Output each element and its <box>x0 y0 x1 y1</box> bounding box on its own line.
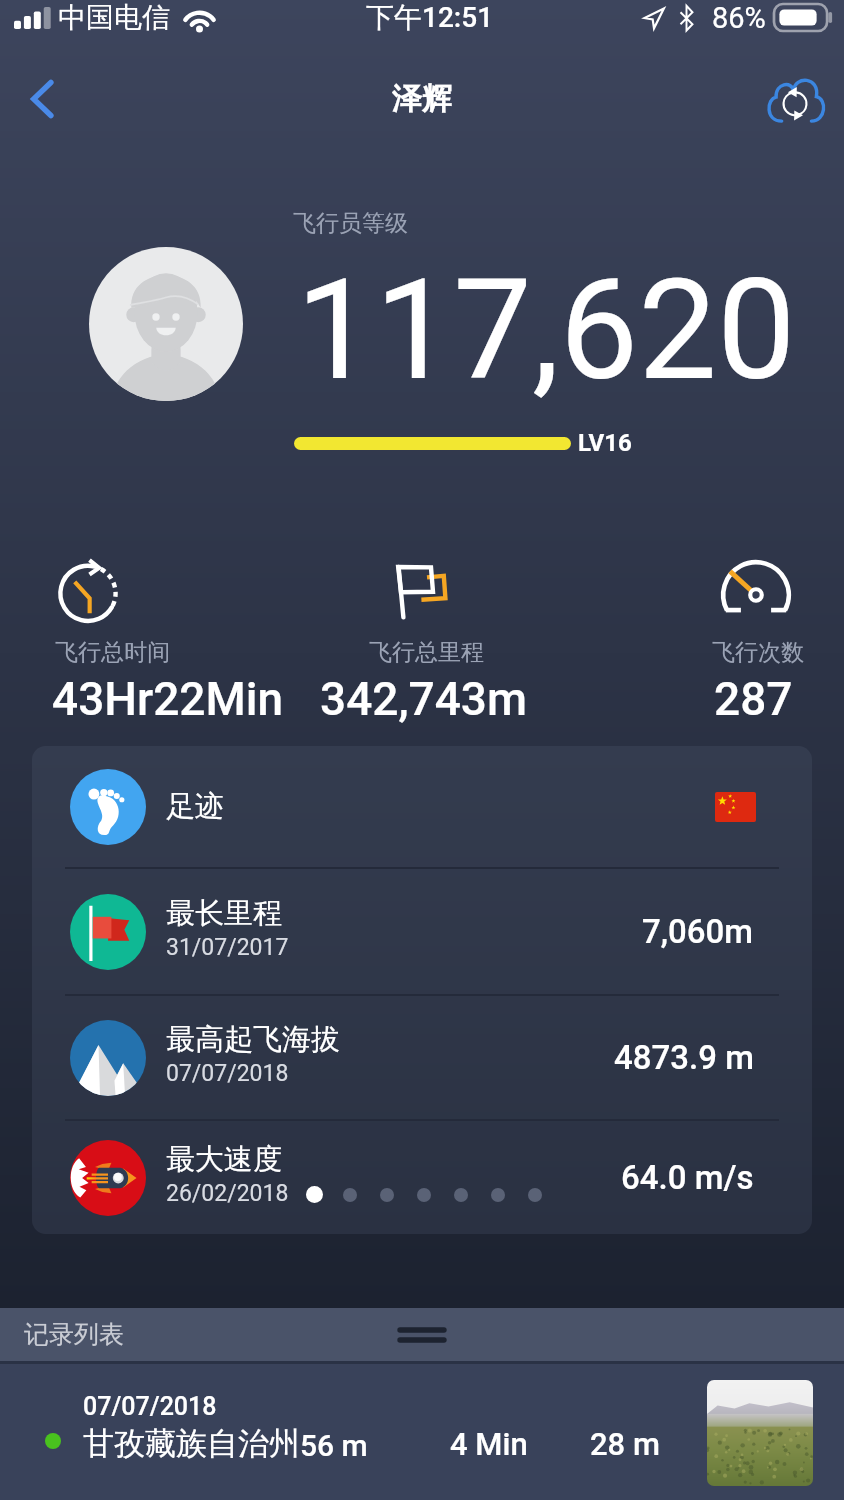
staticText: 下午12:51 <box>366 0 494 35</box>
staticText: 43Hr22Min <box>52 672 284 726</box>
staticText: 117,620 <box>296 248 796 412</box>
button[interactable]: 最大速度 <box>32 1121 812 1234</box>
staticText: 31/07/2017 <box>166 934 289 961</box>
staticText: 甘孜藏族自治州 <box>83 1424 300 1463</box>
staticText: 最大速度 <box>166 1141 282 1178</box>
staticText: 28 m <box>590 1426 660 1462</box>
button[interactable]: 足迹 <box>32 746 812 867</box>
button[interactable]: 07/07/2018 <box>0 1364 844 1500</box>
staticText: 飞行员等级 <box>293 209 408 238</box>
staticText: 07/07/2018 <box>166 1060 289 1087</box>
staticText: 最高起飞海拔 <box>166 1021 340 1058</box>
staticText: 飞行总里程 <box>369 638 484 667</box>
staticText: 中国电信 <box>58 0 170 35</box>
staticText: 7,060m <box>642 912 754 951</box>
staticText: 泽辉 <box>392 80 452 118</box>
button[interactable]: 最高起飞海拔 <box>32 996 812 1119</box>
staticText: LV16 <box>578 429 632 457</box>
staticText: 07/07/2018 <box>83 1392 217 1421</box>
staticText: 342,743m <box>320 672 528 726</box>
staticText: 飞行次数 <box>712 638 804 667</box>
button[interactable]: 最长里程 <box>32 869 812 994</box>
staticText: 4 Min <box>450 1426 528 1462</box>
staticText: 记录列表 <box>24 1319 124 1350</box>
button[interactable]: Sync <box>760 64 830 134</box>
staticText: 4873.9 m <box>614 1038 754 1077</box>
button[interactable]: Back <box>12 69 72 129</box>
button[interactable]: 记录列表 <box>0 1308 844 1361</box>
staticText: 最长里程 <box>166 895 282 932</box>
staticText: 64.0 m/s <box>621 1158 754 1197</box>
staticText: 飞行总时间 <box>55 638 170 667</box>
staticText: 86% <box>712 1 766 35</box>
staticText: 287 <box>714 672 793 726</box>
staticText: 26/02/2018 <box>166 1180 289 1207</box>
staticText: 56 m <box>300 1428 368 1463</box>
staticText: 足迹 <box>166 788 224 825</box>
